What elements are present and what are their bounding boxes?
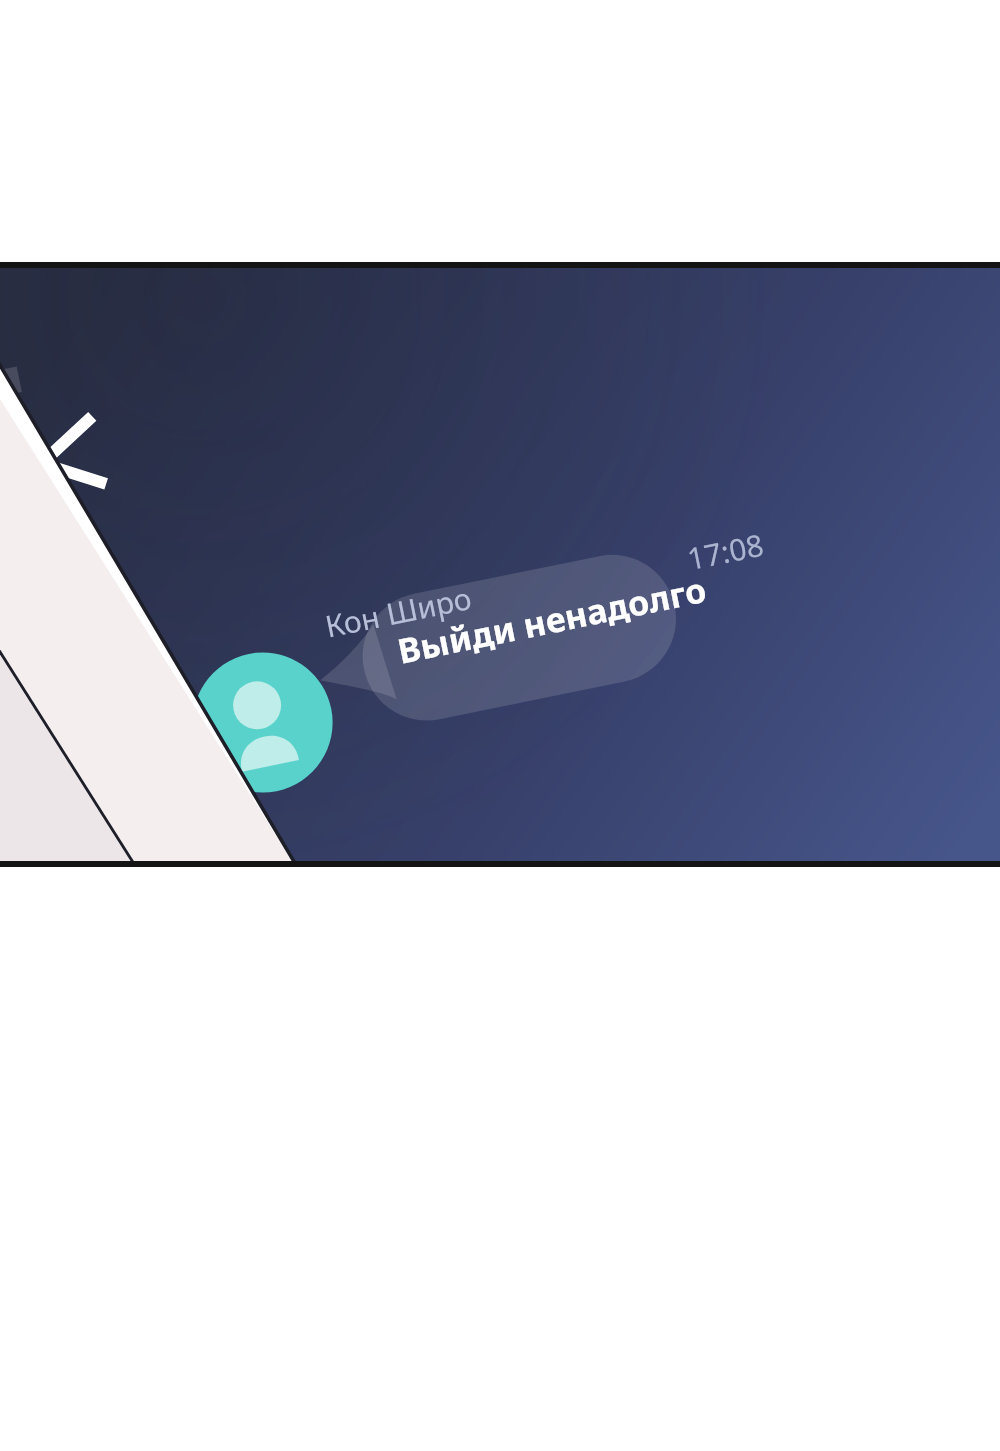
button[interactable]: Chat conversation panel [0,0,1000,1451]
